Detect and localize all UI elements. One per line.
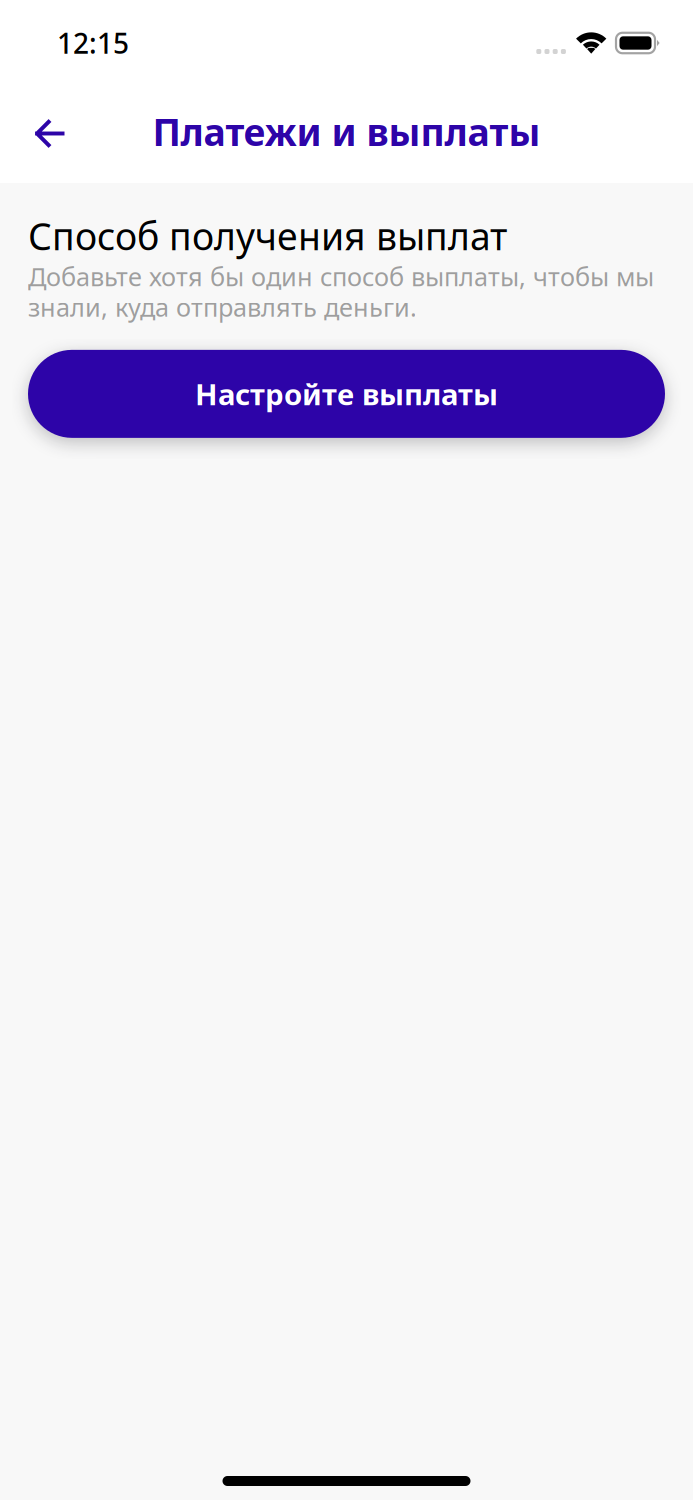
button[interactable]: Back xyxy=(0,98,90,177)
staticText: Добавьте хотя бы один способ выплаты, чт… xyxy=(28,260,654,324)
staticText: Платежи и выплаты xyxy=(152,107,540,156)
staticText: Настройте выплаты xyxy=(195,374,498,413)
button[interactable]: Настройте выплаты xyxy=(28,350,665,438)
staticText: Способ получения выплат xyxy=(28,211,507,261)
staticText: 12:15 xyxy=(57,24,129,62)
